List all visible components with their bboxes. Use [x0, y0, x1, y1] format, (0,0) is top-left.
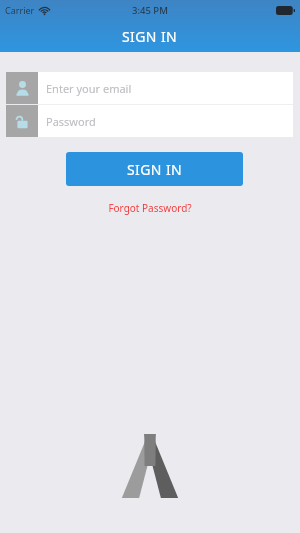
- button[interactable]: Enter your email: [6, 72, 293, 104]
- staticText: SIGN IN: [127, 160, 183, 179]
- staticText: Carrier: [5, 4, 35, 16]
- button[interactable]: Forgot Password?: [0, 198, 300, 218]
- staticText: Password: [46, 114, 96, 129]
- staticText: SIGN IN: [122, 27, 178, 46]
- other: App logo: [118, 432, 182, 500]
- staticText: Enter your email: [46, 81, 132, 96]
- button[interactable]: Password: [6, 105, 293, 137]
- button[interactable]: SIGN IN: [66, 152, 243, 186]
- staticText: 3:45 PM: [132, 4, 168, 17]
- staticText: Forgot Password?: [108, 201, 192, 215]
